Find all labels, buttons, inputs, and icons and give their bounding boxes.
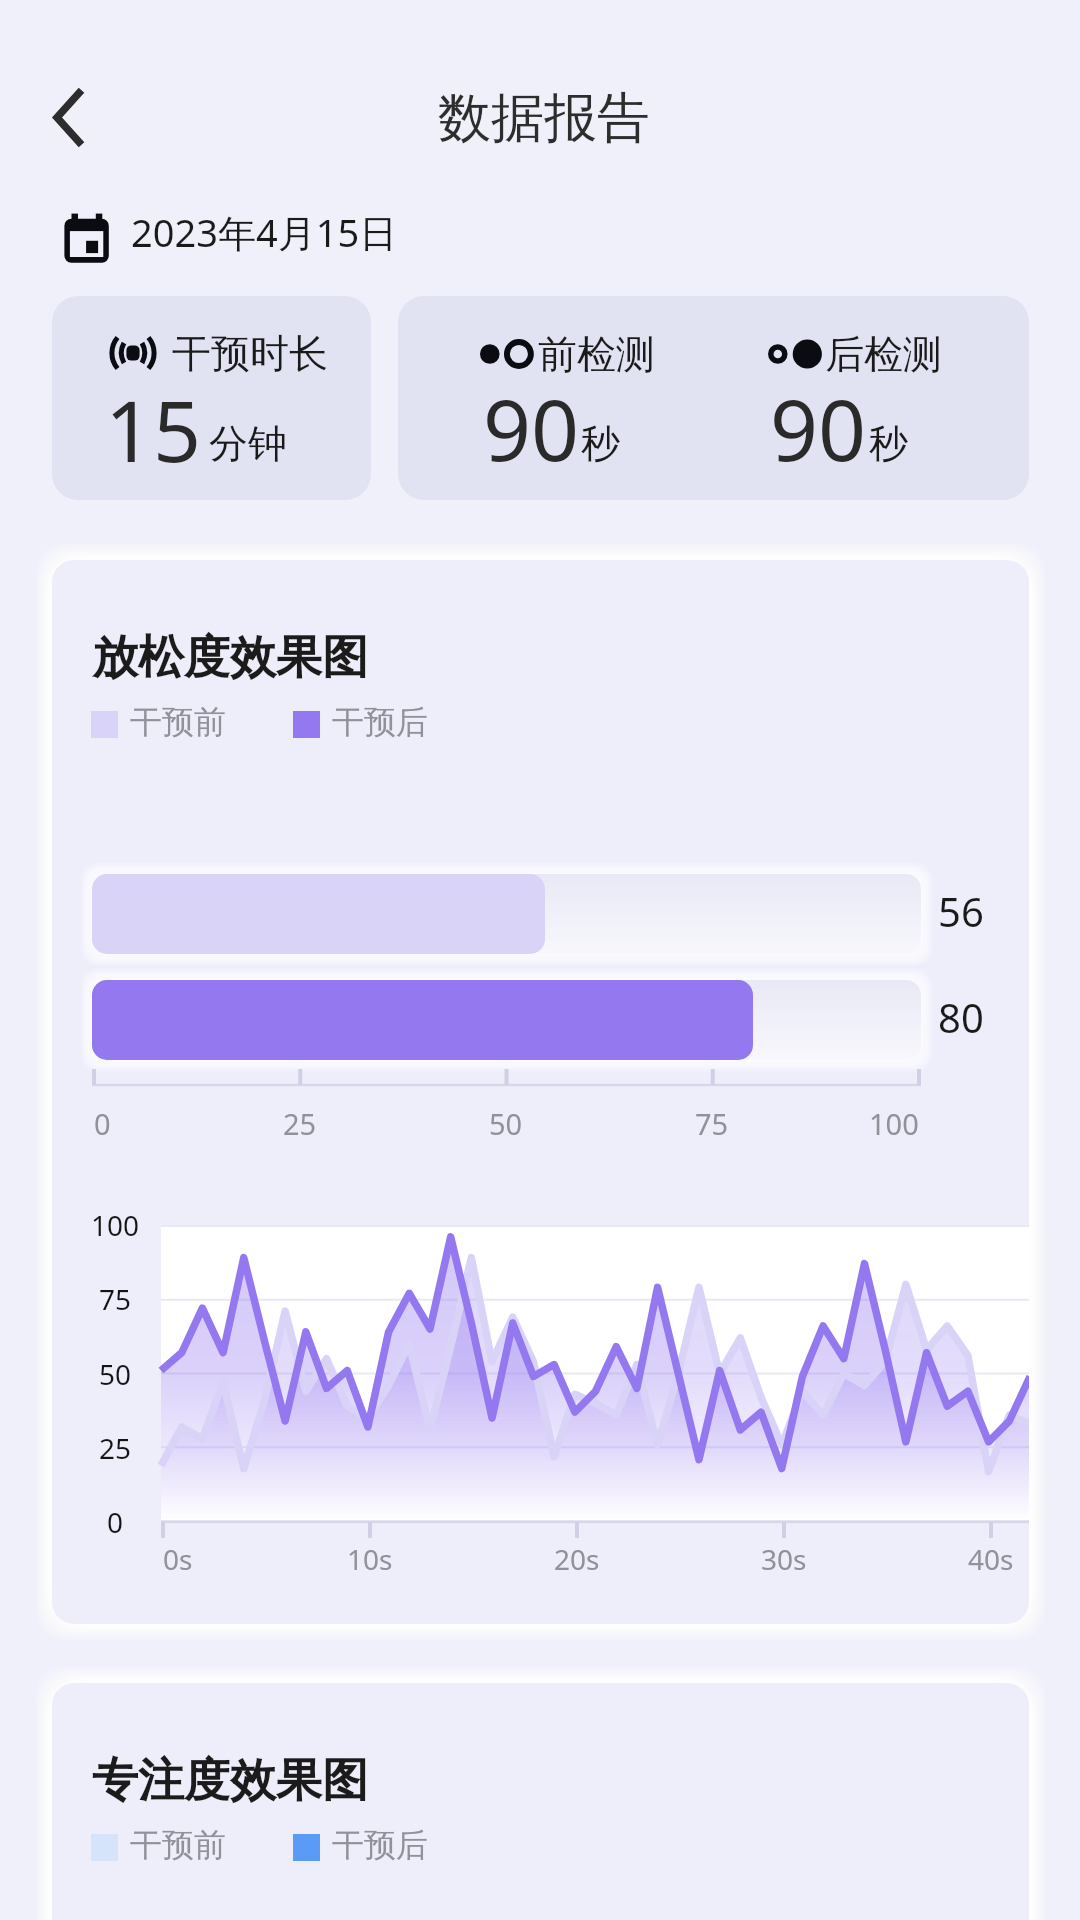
staticText: 干预后: [332, 1825, 428, 1865]
staticText: 10s: [347, 1540, 393, 1578]
staticText: 75: [99, 1280, 132, 1318]
button[interactable]: [52, 296, 371, 500]
staticText: 干预前: [130, 702, 226, 742]
staticText: 0: [94, 1104, 111, 1143]
staticText: 90: [770, 371, 867, 485]
staticText: 后检测: [825, 330, 942, 379]
staticText: 数据报告: [438, 85, 650, 152]
staticText: 50: [99, 1355, 132, 1393]
staticText: 干预前: [130, 1825, 226, 1865]
button[interactable]: Back: [24, 68, 114, 158]
staticText: 90: [483, 371, 580, 485]
staticText: 放松度效果图: [92, 629, 368, 687]
staticText: 干预时长: [172, 329, 328, 378]
button[interactable]: [398, 296, 1029, 500]
staticText: 前检测: [538, 330, 655, 379]
staticText: 50: [489, 1104, 523, 1143]
staticText: 秒: [869, 419, 908, 468]
staticText: 专注度效果图: [92, 1752, 368, 1810]
staticText: 56: [938, 884, 984, 938]
staticText: 20s: [554, 1540, 600, 1578]
staticText: 25: [99, 1429, 132, 1467]
staticText: 分钟: [209, 419, 287, 468]
staticText: 15: [105, 372, 202, 486]
staticText: 75: [695, 1104, 729, 1143]
staticText: 30s: [761, 1540, 807, 1578]
staticText: 25: [283, 1104, 317, 1143]
staticText: 100: [869, 1104, 919, 1143]
staticText: 秒: [581, 419, 620, 468]
staticText: 干预后: [332, 702, 428, 742]
staticText: 2023年4月15日: [131, 206, 398, 258]
staticText: 40s: [968, 1540, 1014, 1578]
staticText: 0s: [163, 1540, 193, 1578]
staticText: 80: [938, 990, 984, 1044]
staticText: 0: [107, 1503, 124, 1541]
staticText: 100: [91, 1206, 140, 1244]
